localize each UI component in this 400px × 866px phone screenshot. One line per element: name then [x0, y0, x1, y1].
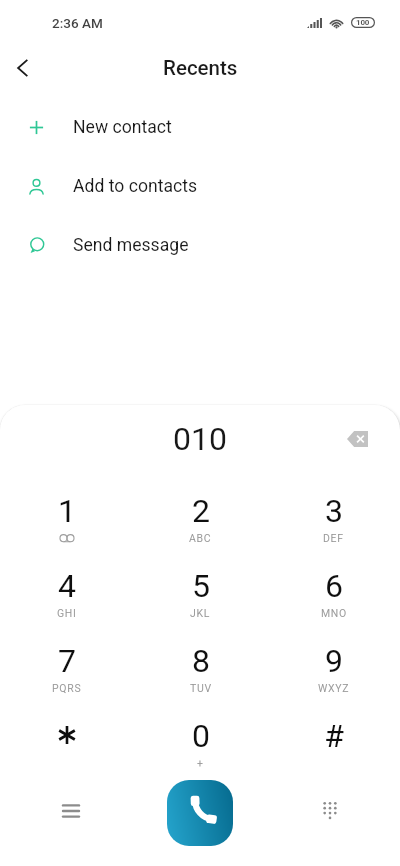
button[interactable]: Add to contacts	[0, 157, 400, 216]
button[interactable]: 4	[0, 555, 134, 630]
staticText: DEF	[323, 532, 344, 544]
button[interactable]: Send message	[0, 216, 400, 275]
staticText: #	[324, 717, 344, 755]
staticText: ABC	[189, 532, 212, 544]
button[interactable]: Back	[0, 46, 44, 90]
staticText: 010	[173, 420, 227, 458]
staticText: Add to contacts	[73, 176, 197, 197]
staticText: 2	[192, 492, 210, 530]
staticText: New contact	[73, 117, 172, 138]
staticText: 4	[58, 567, 76, 605]
staticText: TUV	[190, 682, 212, 694]
button[interactable]: 8	[134, 630, 267, 705]
staticText: 6	[325, 567, 343, 605]
staticText: 2:36 AM	[52, 15, 103, 31]
button[interactable]: Backspace	[336, 418, 378, 460]
staticText: 1	[58, 492, 76, 530]
button[interactable]: 5	[134, 555, 267, 630]
staticText: +	[197, 757, 204, 769]
staticText: PQRS	[52, 682, 82, 694]
staticText: 9	[325, 642, 343, 680]
staticText: Recents	[163, 56, 238, 80]
button[interactable]: 0	[134, 705, 267, 780]
staticText: Send message	[73, 235, 189, 256]
staticText: GHI	[57, 607, 77, 619]
staticText: 0	[192, 717, 210, 755]
staticText: 7	[58, 642, 76, 680]
button[interactable]: Call	[167, 780, 233, 846]
button[interactable]: 9	[267, 630, 400, 705]
staticText: 3	[325, 492, 343, 530]
button[interactable]: Menu	[48, 788, 94, 834]
button[interactable]: 7	[0, 630, 134, 705]
staticText: JKL	[190, 607, 211, 619]
button[interactable]: 6	[267, 555, 400, 630]
staticText: WXYZ	[318, 682, 350, 694]
staticText: 5	[192, 567, 210, 605]
button[interactable]: Dialpad	[307, 787, 353, 833]
button[interactable]	[0, 705, 134, 780]
button[interactable]: #	[267, 705, 400, 780]
button[interactable]: New contact	[0, 98, 400, 157]
button[interactable]: 1	[0, 480, 134, 555]
staticText: MNO	[321, 607, 347, 619]
button[interactable]: 3	[267, 480, 400, 555]
staticText: 8	[192, 642, 210, 680]
button[interactable]: 2	[134, 480, 267, 555]
staticText: 100	[356, 18, 370, 27]
